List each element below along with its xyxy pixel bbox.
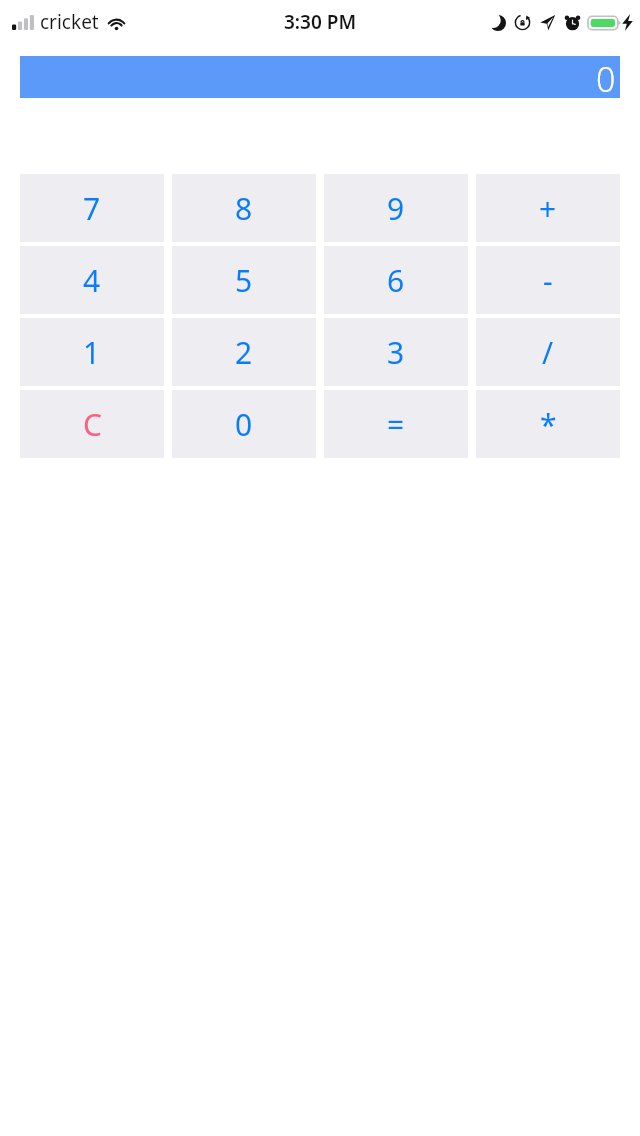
button[interactable]: / bbox=[476, 318, 620, 386]
staticText: 3 bbox=[387, 332, 405, 373]
button[interactable]: Display 0 bbox=[20, 56, 620, 98]
button[interactable]: 6 bbox=[324, 246, 468, 314]
staticText: * bbox=[540, 404, 557, 445]
staticText: 8 bbox=[235, 188, 253, 229]
staticText: / bbox=[542, 332, 554, 373]
button[interactable]: = bbox=[324, 390, 468, 458]
button[interactable]: 8 bbox=[172, 174, 316, 242]
button[interactable]: - bbox=[476, 246, 620, 314]
staticText: 6 bbox=[387, 260, 405, 301]
button[interactable]: 9 bbox=[324, 174, 468, 242]
button[interactable]: 5 bbox=[172, 246, 316, 314]
button[interactable]: 0 bbox=[172, 390, 316, 458]
button[interactable]: C bbox=[20, 390, 164, 458]
staticText: 9 bbox=[387, 188, 405, 229]
button[interactable]: 4 bbox=[20, 246, 164, 314]
button[interactable]: 2 bbox=[172, 318, 316, 386]
staticText: 0 bbox=[235, 404, 253, 445]
staticText: = bbox=[387, 404, 405, 445]
staticText: 7 bbox=[83, 188, 101, 229]
staticText: 3:30 PM bbox=[284, 9, 357, 35]
staticText: cricket bbox=[40, 9, 99, 35]
staticText: C bbox=[83, 404, 102, 445]
staticText: 0 bbox=[596, 56, 616, 98]
staticText: 5 bbox=[235, 260, 253, 301]
staticText: 4 bbox=[83, 260, 101, 301]
staticText: + bbox=[539, 188, 557, 229]
button[interactable]: * bbox=[476, 390, 620, 458]
button[interactable]: 1 bbox=[20, 318, 164, 386]
button[interactable]: 7 bbox=[20, 174, 164, 242]
staticText: - bbox=[543, 260, 553, 301]
staticText: 2 bbox=[235, 332, 253, 373]
button[interactable]: + bbox=[476, 174, 620, 242]
staticText: 1 bbox=[83, 332, 101, 373]
button[interactable]: 3 bbox=[324, 318, 468, 386]
